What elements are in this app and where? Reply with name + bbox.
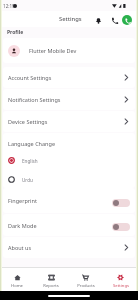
- staticText: Settings: [113, 283, 129, 289]
- button[interactable]: Dark Mode toggle: [112, 223, 130, 231]
- button[interactable]: Settings: [103, 268, 138, 291]
- staticText: Profile: [7, 29, 24, 36]
- staticText: Home: [11, 283, 23, 289]
- staticText: About us: [8, 244, 32, 251]
- staticText: 12:19: [3, 3, 15, 9]
- staticText: Dark Mode: [8, 222, 37, 229]
- button[interactable]: Home: [0, 268, 34, 291]
- button[interactable]: Dark Mode: [3, 214, 135, 236]
- button[interactable]: WhatsApp: [122, 15, 132, 25]
- staticText: Account Settings: [8, 74, 52, 81]
- staticText: Notification Settings: [8, 96, 61, 103]
- button[interactable]: Urdu: [8, 176, 130, 183]
- button[interactable]: Products: [68, 268, 103, 291]
- staticText: Fingerprint: [8, 197, 37, 204]
- staticText: Language Change: [8, 140, 55, 147]
- staticText: Flutter Mobile Dev: [29, 47, 77, 54]
- button[interactable]: English: [8, 157, 130, 164]
- staticText: English: [22, 158, 38, 164]
- button[interactable]: Fingerprint: [3, 188, 135, 213]
- button[interactable]: Fingerprint toggle: [112, 199, 130, 207]
- staticText: Products: [77, 283, 95, 289]
- button[interactable]: Account Settings: [3, 67, 135, 88]
- staticText: Device Settings: [8, 118, 48, 125]
- staticText: Urdu: [22, 177, 33, 183]
- button[interactable]: Device Settings: [3, 111, 135, 132]
- button[interactable]: Flutter Mobile Dev: [3, 38, 135, 63]
- staticText: Settings: [59, 15, 82, 23]
- button[interactable]: Reports: [34, 268, 68, 291]
- button[interactable]: Notification Settings: [3, 89, 135, 110]
- button[interactable]: Notifications: [93, 15, 103, 25]
- button[interactable]: Call: [109, 15, 119, 25]
- button[interactable]: About us: [3, 237, 135, 258]
- staticText: Reports: [43, 283, 59, 289]
